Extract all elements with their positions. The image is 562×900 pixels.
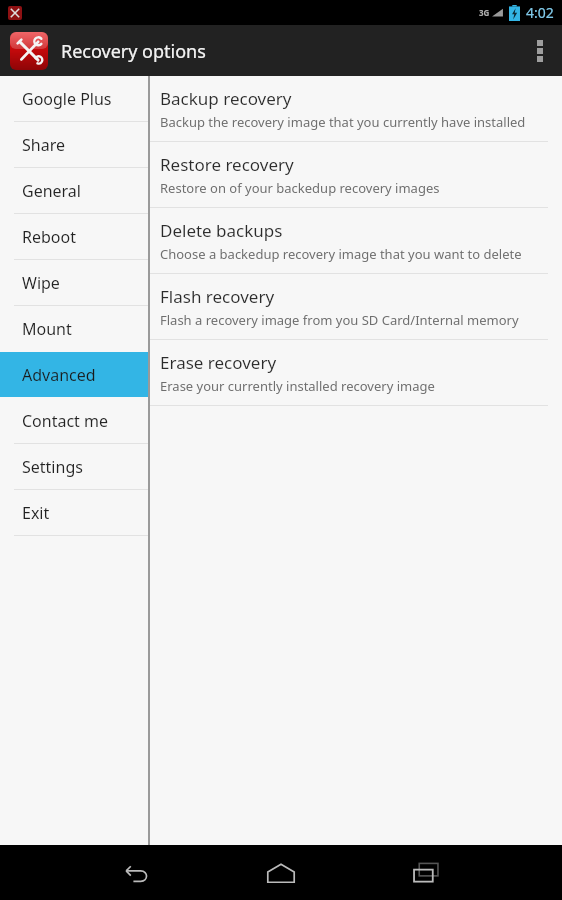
staticText: General [22,180,81,202]
staticText: Google Plus [22,88,112,110]
staticText: Wipe [22,272,60,294]
button[interactable]: Mount [0,306,148,351]
staticText: Delete backups [160,219,283,242]
button[interactable]: Back [99,845,173,900]
staticText: Reboot [22,226,76,248]
button[interactable]: Recovery options [10,32,206,70]
staticText: Backup recovery [160,87,292,110]
button[interactable]: Reboot [0,214,148,259]
staticText: 4:02 [526,3,554,22]
button[interactable]: Advanced [0,352,148,397]
staticText: Settings [22,456,83,478]
staticText: Backup the recovery image that you curre… [160,113,526,131]
staticText: Restore recovery [160,153,294,176]
button[interactable]: Google Plus [0,76,148,121]
button[interactable]: Exit [0,490,148,535]
staticText: Restore on of your backedup recovery ima… [160,179,440,197]
staticText: Mount [22,318,72,340]
button[interactable]: General [0,168,148,213]
button[interactable]: Delete backups [150,208,562,273]
button[interactable]: Wipe [0,260,148,305]
button[interactable]: Restore recovery [150,142,562,207]
staticText: Choose a backedup recovery image that yo… [160,245,522,263]
staticText: Share [22,134,65,156]
staticText: Recovery options [61,39,206,64]
staticText: Flash recovery [160,285,275,308]
button[interactable]: Contact me [0,398,148,443]
staticText: Erase recovery [160,351,277,374]
staticText: Exit [22,502,50,524]
staticText: Flash a recovery image from you SD Card/… [160,311,519,329]
button[interactable]: Share [0,122,148,167]
button[interactable]: Settings [0,444,148,489]
button[interactable]: Backup recovery [150,76,562,141]
button[interactable]: Flash recovery [150,274,562,339]
staticText: 3G [479,7,490,18]
staticText: Advanced [22,364,96,386]
button[interactable]: More options [518,25,562,76]
button[interactable]: Erase recovery [150,340,562,405]
staticText: Erase your currently installed recovery … [160,377,435,395]
button[interactable]: Recent apps [389,845,463,900]
button[interactable]: Home [244,845,318,900]
staticText: Contact me [22,410,109,432]
